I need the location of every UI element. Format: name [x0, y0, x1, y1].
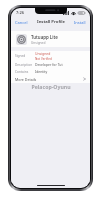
staticText: Pelacop-Oyunu [31, 83, 71, 90]
staticText: Developer for Tut [35, 62, 63, 67]
staticText: Install [74, 20, 86, 25]
staticText: Cancel [15, 20, 28, 25]
button[interactable]: Install [70, 18, 90, 27]
staticText: Identity [35, 69, 48, 74]
other: More Details [83, 77, 86, 81]
button[interactable]: Tutuapp Lite [11, 31, 90, 47]
button[interactable]: Signed [11, 51, 90, 61]
staticText: 7:26 [16, 10, 24, 15]
button[interactable]: More Details [11, 75, 90, 83]
staticText: Not Verified [35, 57, 52, 61]
staticText: Install Profile [37, 19, 65, 25]
staticText: Signed [15, 54, 35, 58]
button[interactable]: Contains [11, 68, 90, 75]
staticText: Unsigned [35, 51, 51, 56]
button[interactable]: Cancel [11, 18, 32, 27]
staticText: Unsigned [31, 41, 46, 45]
staticText: Contains [15, 70, 35, 74]
staticText: Description [15, 63, 35, 67]
staticText: More Details [15, 77, 37, 82]
staticText: Tutuapp Lite [31, 34, 58, 40]
button[interactable]: Description [11, 61, 90, 68]
